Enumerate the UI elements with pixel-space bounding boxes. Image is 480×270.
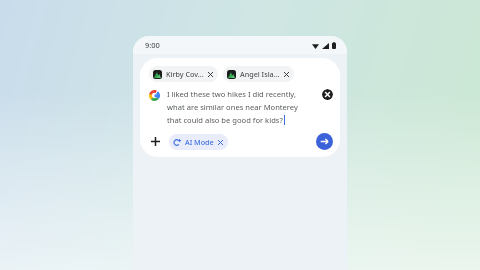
staticText: I liked these two hikes I did recently, [167,89,296,99]
staticText: AI Mode [185,137,214,147]
staticText: what are similar ones near Monterey [167,102,298,112]
button[interactable]: AI Mode [169,134,228,150]
button[interactable]: Angel Isla... [223,66,294,82]
button[interactable]: Send [316,133,333,150]
button[interactable]: Clear text [322,89,333,100]
staticText: Kirby Cov... [166,69,204,79]
staticText: Angel Isla... [240,69,280,79]
button[interactable]: Add attachment [149,135,162,148]
staticText: 9:00 [145,40,160,50]
staticText: that could also be good for kids? [167,115,283,125]
button[interactable]: Kirby Cov... [149,66,218,82]
